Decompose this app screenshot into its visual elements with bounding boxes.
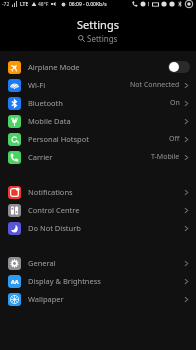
button[interactable]: General bbox=[0, 254, 196, 272]
staticText: 48°F bbox=[38, 1, 49, 8]
staticText: ! bbox=[148, 1, 150, 8]
button[interactable]: Wi-Fi bbox=[0, 76, 196, 94]
staticText: Control Centre bbox=[28, 205, 80, 215]
button[interactable]: Airplane Mode bbox=[0, 58, 196, 76]
staticText: 06:09 - 0.00Kb/s bbox=[69, 1, 107, 8]
staticText: Do Not Disturb bbox=[28, 223, 81, 233]
button[interactable]: Wallpaper bbox=[0, 290, 196, 308]
staticText: Not Connected bbox=[130, 80, 180, 90]
staticText: Settings bbox=[87, 33, 118, 44]
staticText: Wallpaper bbox=[28, 294, 64, 304]
staticText: Settings bbox=[77, 17, 119, 32]
button[interactable]: AA bbox=[0, 272, 196, 290]
button[interactable]: Personal Hotspot bbox=[0, 130, 196, 148]
staticText: AA bbox=[11, 278, 19, 285]
staticText: Mobile Data bbox=[28, 116, 71, 126]
staticText: Bluetooth bbox=[28, 98, 63, 108]
staticText: General bbox=[28, 258, 56, 268]
staticText: Wi-Fi bbox=[28, 80, 46, 90]
button[interactable]: Control Centre bbox=[0, 201, 196, 219]
staticText: Off bbox=[169, 134, 180, 144]
staticText: Personal Hotspot bbox=[28, 134, 89, 144]
staticText: Carrier bbox=[28, 152, 53, 162]
staticText: Airplane Mode bbox=[28, 62, 80, 72]
button[interactable]: Carrier bbox=[0, 148, 196, 166]
staticText: LTE bbox=[20, 1, 29, 8]
button[interactable]: Bluetooth bbox=[0, 94, 196, 112]
button[interactable]: Airplane Mode toggle bbox=[168, 61, 190, 73]
button[interactable]: Notifications bbox=[0, 183, 196, 201]
button[interactable]: Do Not Disturb bbox=[0, 219, 196, 237]
button[interactable]: Mobile Data bbox=[0, 112, 196, 130]
staticText: Notifications bbox=[28, 187, 73, 197]
staticText: -72 bbox=[2, 1, 10, 8]
staticText: T-Mobile bbox=[151, 152, 180, 162]
button[interactable]: Settings bbox=[74, 32, 122, 45]
staticText: Display & Brightness bbox=[28, 276, 101, 286]
staticText: On bbox=[170, 98, 180, 108]
